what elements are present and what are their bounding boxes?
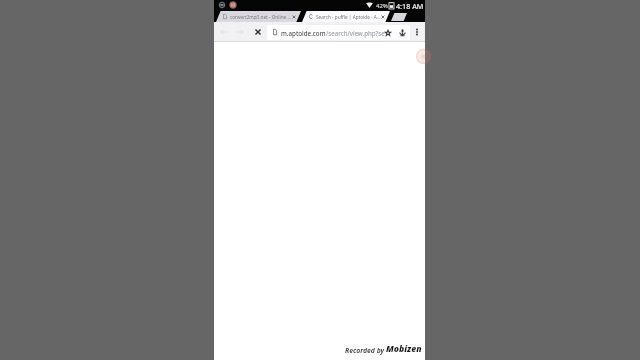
- staticText: Mobizen: [386, 343, 422, 355]
- staticText: Recorded by: [345, 346, 386, 355]
- button[interactable]: Recorder: [416, 49, 431, 64]
- staticText: 42%: [376, 2, 388, 10]
- button[interactable]: Stop loading: [250, 24, 266, 40]
- staticText: convert2mp3.net - Online Vi...: [230, 14, 292, 20]
- button[interactable]: Voice search: [395, 25, 409, 40]
- button[interactable]: convert2mp3.net - Online Vi...: [216, 11, 301, 22]
- button[interactable]: Search - puffle | Aptoide - An...: [302, 11, 390, 22]
- staticText: Search - puffle | Aptoide - An...: [316, 14, 381, 20]
- staticText: /search/view.php?se: [326, 29, 385, 37]
- button[interactable]: Close tab: [378, 11, 387, 22]
- staticText: 4:18 AM: [396, 1, 424, 11]
- button[interactable]: m.aptoide.com: [267, 25, 410, 40]
- button[interactable]: Tab: [391, 13, 407, 21]
- button[interactable]: More options: [409, 24, 425, 40]
- button[interactable]: Close tab: [289, 11, 298, 22]
- button[interactable]: Bookmark: [381, 25, 395, 40]
- staticText: m.aptoide.com: [281, 29, 326, 37]
